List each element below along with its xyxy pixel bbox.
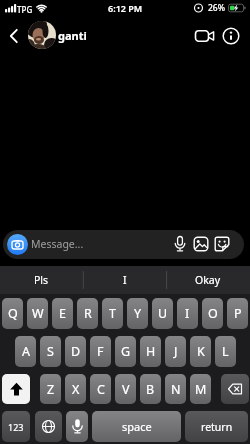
staticText: Z <box>47 381 55 398</box>
button[interactable]: B <box>140 374 161 404</box>
button[interactable]: L <box>215 336 236 367</box>
button[interactable]: Pls <box>0 266 83 294</box>
staticText: H <box>146 343 156 360</box>
button[interactable]: T <box>102 298 123 329</box>
button[interactable]: A <box>15 336 36 367</box>
staticText: E <box>59 305 66 322</box>
button[interactable]: K <box>190 336 211 367</box>
button[interactable]: H <box>140 336 161 367</box>
staticText: U <box>158 305 168 322</box>
staticText: O <box>208 305 218 322</box>
staticText: 26% <box>208 2 225 14</box>
staticText: F <box>97 343 104 360</box>
button[interactable]: F <box>90 336 111 367</box>
button[interactable] <box>193 236 209 252</box>
staticText: N <box>171 381 181 398</box>
button[interactable] <box>221 374 249 404</box>
staticText: B <box>146 381 155 398</box>
button[interactable]: W <box>27 298 48 329</box>
button[interactable] <box>192 26 218 46</box>
staticText: Q <box>8 305 18 322</box>
staticText: 6:12 PM <box>108 2 143 14</box>
staticText: Y <box>134 305 142 322</box>
button[interactable] <box>171 235 189 254</box>
button[interactable]: I <box>83 266 166 294</box>
button[interactable]: J <box>165 336 186 367</box>
button[interactable]: Okay <box>166 266 250 294</box>
button[interactable] <box>28 21 56 49</box>
staticText: X <box>72 381 80 398</box>
button[interactable]: Message... <box>3 230 244 259</box>
button[interactable]: 123 <box>2 411 30 442</box>
button[interactable]: I <box>177 298 198 329</box>
button[interactable] <box>7 234 28 255</box>
staticText: G <box>121 343 131 360</box>
button[interactable] <box>214 236 230 252</box>
button[interactable]: X <box>65 374 86 404</box>
staticText: A <box>22 343 30 360</box>
staticText: I <box>123 273 127 287</box>
staticText: I <box>185 305 190 322</box>
staticText: L <box>222 343 229 360</box>
button[interactable] <box>2 374 30 404</box>
staticText: S <box>47 343 54 360</box>
staticText: C <box>97 381 105 398</box>
button[interactable]: Y <box>127 298 148 329</box>
button[interactable]: return <box>185 411 248 442</box>
button[interactable] <box>35 411 62 442</box>
button[interactable]: space <box>92 411 181 442</box>
staticText: R <box>84 305 92 322</box>
button[interactable]: E <box>52 298 73 329</box>
staticText: Pls <box>34 273 49 287</box>
staticText: V <box>122 381 130 398</box>
staticText: W <box>32 305 44 322</box>
button[interactable]: V <box>115 374 136 404</box>
button[interactable] <box>66 411 88 442</box>
staticText: T <box>109 305 116 322</box>
staticText: M <box>195 381 207 398</box>
button[interactable]: S <box>40 336 61 367</box>
button[interactable]: M <box>190 374 211 404</box>
button[interactable]: U <box>152 298 173 329</box>
button[interactable] <box>221 26 241 46</box>
staticText: TPG <box>17 4 33 15</box>
staticText: D <box>71 343 81 360</box>
button[interactable]: G <box>115 336 136 367</box>
button[interactable]: O <box>202 298 223 329</box>
button[interactable]: Q <box>2 298 23 329</box>
button[interactable] <box>4 26 24 46</box>
staticText: K <box>197 343 205 360</box>
staticText: Okay <box>195 273 221 287</box>
staticText: space <box>122 419 152 434</box>
staticText: P <box>234 305 242 322</box>
button[interactable]: P <box>227 298 248 329</box>
staticText: Message... <box>31 237 84 251</box>
staticText: ganti <box>58 28 87 43</box>
button[interactable] <box>2 374 30 404</box>
button[interactable]: D <box>65 336 86 367</box>
button[interactable]: C <box>90 374 111 404</box>
staticText: return <box>201 420 233 434</box>
button[interactable]: R <box>77 298 98 329</box>
button[interactable]: N <box>165 374 186 404</box>
staticText: J <box>174 343 178 360</box>
staticText: 123 <box>8 421 24 433</box>
button[interactable]: Z <box>40 374 61 404</box>
